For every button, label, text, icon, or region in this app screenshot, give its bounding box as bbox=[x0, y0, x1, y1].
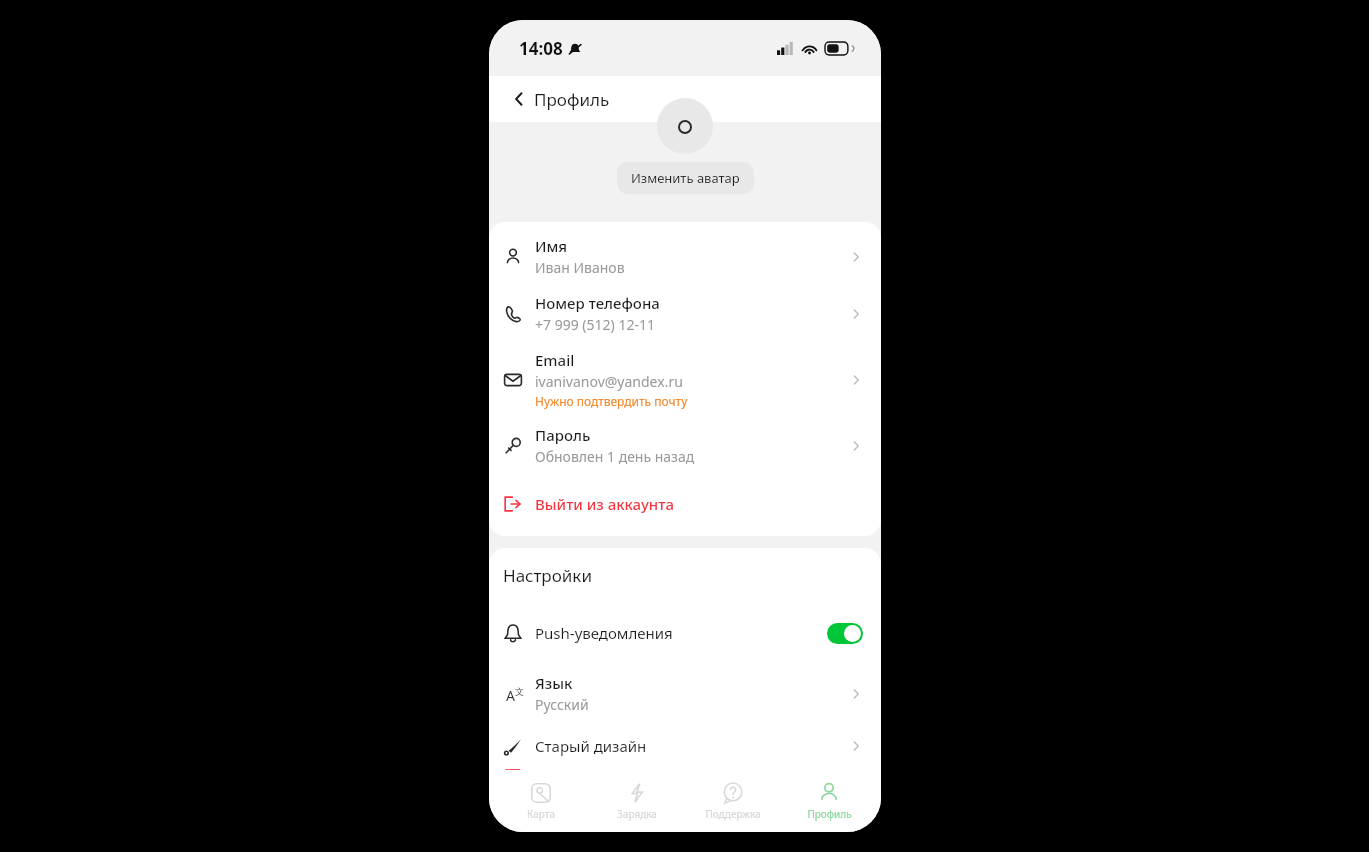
button[interactable]: Изменить аватар bbox=[617, 162, 754, 194]
staticText: Изменить аватар bbox=[631, 169, 740, 187]
button[interactable]: Имя bbox=[489, 228, 881, 285]
staticText: Push-уведомления bbox=[535, 623, 827, 643]
button[interactable]: Зарядка bbox=[593, 778, 681, 825]
staticText: Нужно подтвердить почту bbox=[535, 393, 688, 409]
button[interactable]: Назад bbox=[499, 79, 539, 119]
staticText: 文 bbox=[515, 686, 524, 697]
button[interactable]: Старый дизайн bbox=[489, 724, 881, 768]
button[interactable] bbox=[657, 98, 713, 154]
staticText: +7 999 (512) 12-11 bbox=[535, 315, 655, 334]
staticText: Номер телефона bbox=[535, 293, 660, 313]
button[interactable]: Карта bbox=[497, 778, 585, 825]
button[interactable]: Профиль bbox=[785, 778, 873, 825]
staticText: Email bbox=[535, 350, 575, 370]
button[interactable]: Номер телефона bbox=[489, 285, 881, 342]
staticText: Язык bbox=[535, 673, 573, 693]
staticText: 14:08 bbox=[519, 37, 563, 60]
staticText: Пароль bbox=[535, 425, 591, 445]
staticText: Карта bbox=[527, 807, 555, 821]
staticText: Выйти из аккаунта bbox=[535, 494, 674, 514]
staticText: Русский bbox=[535, 695, 589, 714]
staticText: Старый дизайн bbox=[535, 736, 849, 756]
staticText: Профиль bbox=[807, 807, 852, 821]
button[interactable]: Поддержка bbox=[689, 778, 777, 825]
staticText: Профиль bbox=[534, 88, 610, 111]
button[interactable]: Пароль bbox=[489, 417, 881, 474]
staticText: Зарядка bbox=[617, 807, 657, 821]
staticText: Иван Иванов bbox=[535, 258, 625, 277]
staticText: Обновлен 1 день назад bbox=[535, 447, 695, 466]
staticText: ivanivanov@yandex.ru bbox=[535, 372, 683, 391]
button[interactable]: Push-уведомления вкл bbox=[827, 623, 863, 644]
staticText: Поддержка bbox=[705, 807, 761, 821]
button[interactable]: A bbox=[489, 665, 881, 722]
button[interactable]: Push-уведомления bbox=[489, 611, 881, 655]
staticText: Настройки bbox=[503, 564, 592, 587]
staticText: A bbox=[506, 686, 515, 705]
staticText: Имя bbox=[535, 236, 568, 256]
button[interactable]: Выйти из аккаунта bbox=[489, 486, 881, 522]
button[interactable]: Email bbox=[489, 342, 881, 417]
